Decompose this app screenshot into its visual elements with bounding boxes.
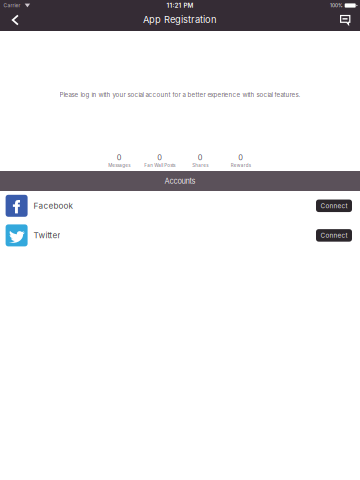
button[interactable]: Messages [331, 11, 360, 31]
staticText: 0 [238, 153, 243, 162]
staticText: Carrier [3, 3, 20, 8]
staticText: Fan Wall Posts [144, 163, 175, 168]
button[interactable]: Facebook [0, 191, 360, 221]
staticText: Shares [192, 163, 208, 168]
staticText: Connect [320, 202, 347, 210]
staticText: 0 [157, 153, 162, 162]
staticText: 100% [330, 3, 343, 8]
staticText: 0 [117, 153, 122, 162]
staticText: Messages [108, 163, 130, 168]
button[interactable]: Back [0, 11, 28, 31]
staticText: Rewards [231, 163, 251, 168]
staticText: Facebook [33, 201, 72, 211]
staticText: 11:21 PM [167, 2, 194, 9]
staticText: Please log in with your social account f… [59, 91, 300, 98]
staticText: Twitter [33, 230, 60, 240]
staticText: Accounts [164, 176, 195, 185]
button[interactable]: Twitter [0, 221, 360, 250]
staticText: Connect [320, 231, 347, 239]
staticText: 0 [198, 153, 203, 162]
staticText: App Registration [143, 14, 217, 25]
